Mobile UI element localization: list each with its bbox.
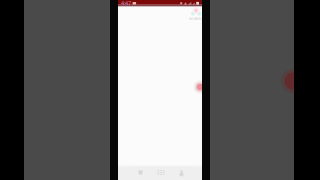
button[interactable]: Contacts — [171, 167, 192, 180]
button[interactable]: New item — [193, 80, 206, 93]
staticText: 4:47 — [121, 0, 131, 7]
staticText: no items — [188, 15, 203, 21]
button[interactable]: Recents — [130, 167, 151, 180]
button[interactable]: Keypad — [151, 167, 171, 180]
